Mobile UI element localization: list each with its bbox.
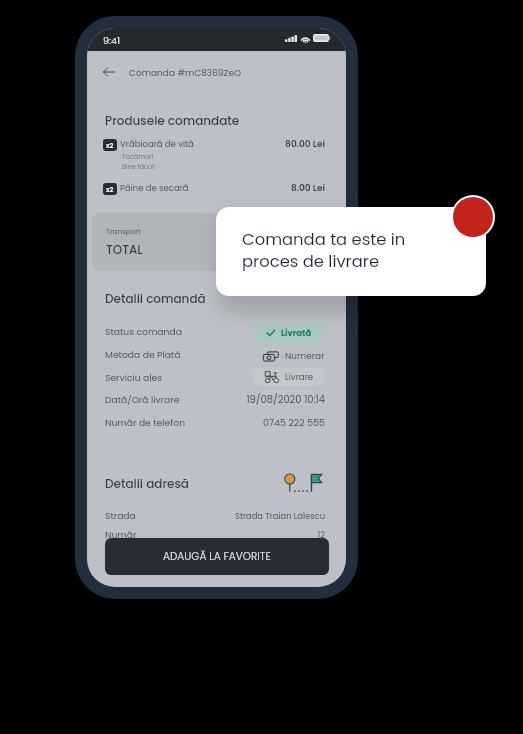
staticText: Bine făcut bbox=[122, 162, 155, 171]
staticText: 8.00 Lei bbox=[290, 182, 325, 195]
staticText: 80.00 Lei bbox=[285, 138, 325, 151]
staticText: 0745 222 555 bbox=[262, 416, 325, 429]
staticText: Detalii comandă bbox=[105, 290, 206, 307]
staticText: Serviciu ales bbox=[105, 371, 163, 384]
button[interactable]: ADAUGĂ LA FAVORITE bbox=[105, 538, 329, 575]
staticText: Comanda #mC8369ZeO bbox=[129, 67, 242, 80]
staticText: Număr de telefon bbox=[105, 416, 186, 429]
staticText: Vrăbioară de vită bbox=[120, 138, 194, 150]
staticText: Detalii adresă bbox=[105, 475, 189, 492]
staticText: Tacâmuri bbox=[122, 152, 154, 161]
staticText: ADAUGĂ LA FAVORITE bbox=[163, 549, 271, 564]
button[interactable]: Comanda ta este in proces de livrare bbox=[216, 207, 486, 296]
button[interactable]: Livrare bbox=[253, 368, 325, 386]
staticText: 19/08/2020 10:14 bbox=[246, 393, 325, 407]
staticText: Livrare bbox=[285, 371, 314, 383]
staticText: Livrată bbox=[281, 327, 312, 339]
other: Notification bbox=[453, 197, 493, 237]
staticText: x2 bbox=[106, 141, 114, 150]
staticText: Status comanda bbox=[105, 325, 182, 338]
staticText: Produsele comandate bbox=[105, 112, 240, 129]
staticText: Număr bbox=[105, 528, 137, 541]
staticText: Metoda de Plată bbox=[105, 348, 181, 361]
staticText: Comanda ta este in proces de livrare bbox=[242, 228, 406, 273]
staticText: Pâine de secară bbox=[120, 182, 189, 194]
staticText: Numerar bbox=[285, 350, 325, 362]
staticText: Transport bbox=[106, 226, 141, 236]
staticText: 9:41 bbox=[103, 34, 121, 47]
staticText: 12 bbox=[317, 529, 325, 541]
button[interactable]: Livrată bbox=[253, 324, 325, 342]
staticText: Strada bbox=[105, 509, 136, 522]
staticText: TOTAL bbox=[106, 241, 143, 258]
button[interactable]: Back bbox=[103, 66, 115, 78]
staticText: x2 bbox=[106, 185, 114, 194]
staticText: Strada Traian Lalescu bbox=[235, 510, 325, 522]
staticText: Dată/Oră livrare bbox=[105, 393, 180, 406]
